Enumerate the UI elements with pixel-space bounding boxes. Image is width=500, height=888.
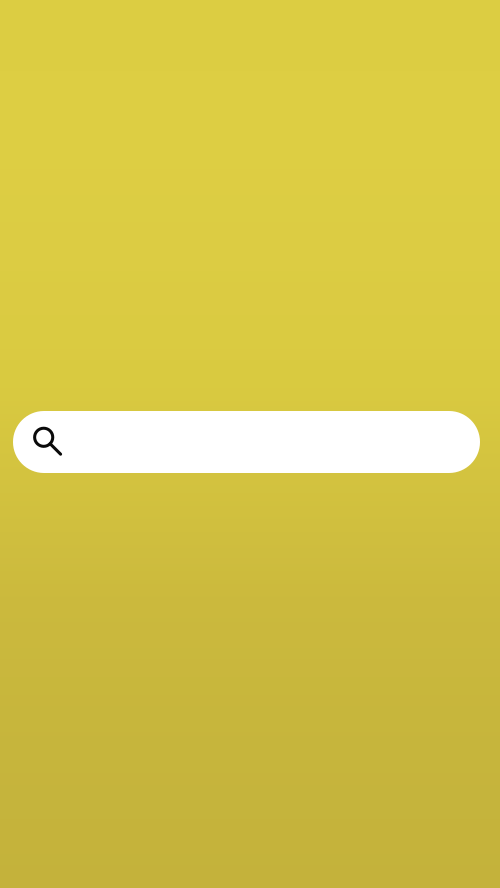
button[interactable]: Search [13,411,480,473]
